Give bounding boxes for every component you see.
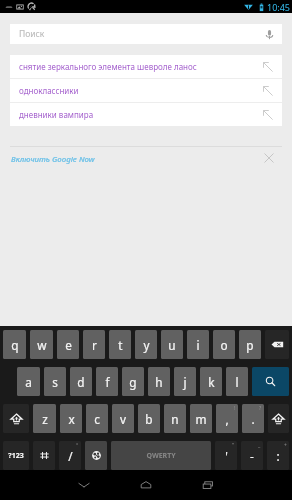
- staticText: b: [145, 411, 153, 427]
- button[interactable]: [268, 404, 289, 433]
- button[interactable]: [265, 330, 289, 359]
- button[interactable]: q: [3, 330, 26, 359]
- staticText: h: [155, 374, 163, 390]
- button[interactable]: v: [112, 404, 134, 433]
- staticText: дневники вампира: [19, 109, 254, 120]
- button[interactable]: одноклассники: [10, 79, 282, 102]
- staticText: ': [225, 448, 228, 464]
- staticText: k: [208, 374, 215, 390]
- button[interactable]: g: [122, 367, 144, 396]
- button[interactable]: Включить Google Now: [0, 147, 292, 172]
- button[interactable]: [3, 404, 29, 433]
- staticText: .: [251, 411, 255, 427]
- button[interactable]: [85, 441, 107, 470]
- button[interactable]: f: [96, 367, 118, 396]
- button[interactable]: снятие зеркального элемента шевроле лано…: [10, 55, 282, 78]
- staticText: r: [92, 337, 97, 353]
- button[interactable]: Back: [53, 470, 115, 500]
- staticText: x: [68, 411, 75, 427]
- staticText: s: [52, 374, 58, 390]
- staticText: :: [276, 448, 280, 464]
- button[interactable]: [252, 367, 289, 396]
- staticText: °: [76, 442, 79, 449]
- staticText: ?: [259, 405, 262, 412]
- button[interactable]: z: [33, 404, 56, 433]
- staticText: ,: [225, 411, 229, 427]
- button[interactable]: m: [190, 404, 212, 433]
- button[interactable]: n: [164, 404, 186, 433]
- button[interactable]: u: [161, 330, 183, 359]
- button[interactable]: Fill in query: [254, 55, 282, 78]
- staticText: ": [232, 442, 235, 449]
- staticText: d: [77, 374, 85, 390]
- staticText: w: [37, 337, 47, 353]
- staticText: y: [143, 337, 150, 353]
- staticText: t: [118, 337, 123, 353]
- button[interactable]: s: [44, 367, 66, 396]
- button[interactable]: j: [174, 367, 196, 396]
- staticText: -: [250, 448, 254, 464]
- button[interactable]: x: [60, 404, 82, 433]
- button[interactable]: Home: [115, 470, 177, 500]
- button[interactable]: p: [239, 330, 261, 359]
- button[interactable]: _: [241, 441, 263, 470]
- staticText: l: [235, 374, 239, 390]
- button[interactable]: Dismiss: [246, 147, 292, 172]
- staticText: f: [105, 374, 110, 390]
- staticText: i: [196, 337, 200, 353]
- button[interactable]: [33, 441, 55, 470]
- button[interactable]: +: [267, 441, 289, 470]
- staticText: одноклассники: [19, 85, 254, 96]
- button[interactable]: QWERTY: [111, 441, 211, 470]
- staticText: снятие зеркального элемента шевроле лано…: [19, 61, 254, 72]
- button[interactable]: h: [148, 367, 170, 396]
- button[interactable]: a: [17, 367, 40, 396]
- button[interactable]: b: [138, 404, 160, 433]
- button[interactable]: w: [30, 330, 53, 359]
- button[interactable]: дневники вампира: [10, 103, 282, 126]
- button[interactable]: i: [187, 330, 209, 359]
- staticText: a: [25, 374, 32, 390]
- button[interactable]: ?123: [3, 441, 29, 470]
- button[interactable]: l: [226, 367, 248, 396]
- staticText: c: [94, 411, 100, 427]
- button[interactable]: c: [86, 404, 108, 433]
- staticText: /: [68, 448, 73, 464]
- button[interactable]: e: [57, 330, 79, 359]
- staticText: g: [129, 374, 137, 390]
- staticText: QWERTY: [146, 451, 176, 461]
- button[interactable]: !: [216, 404, 238, 433]
- button[interactable]: Fill in query: [254, 103, 282, 126]
- button[interactable]: Voice search: [256, 24, 282, 44]
- button[interactable]: r: [83, 330, 105, 359]
- button[interactable]: k: [200, 367, 222, 396]
- staticText: 10:45: [267, 1, 291, 13]
- staticText: j: [183, 374, 187, 390]
- staticText: e: [65, 337, 72, 353]
- staticText: Поиск: [19, 28, 45, 40]
- staticText: _: [258, 442, 261, 449]
- button[interactable]: ?: [242, 404, 264, 433]
- button[interactable]: Recent apps: [177, 470, 239, 500]
- button[interactable]: y: [135, 330, 157, 359]
- staticText: q: [11, 337, 19, 353]
- button[interactable]: Fill in query: [254, 79, 282, 102]
- button[interactable]: o: [213, 330, 235, 359]
- staticText: o: [220, 337, 228, 353]
- button[interactable]: ": [215, 441, 237, 470]
- staticText: Включить Google Now: [11, 154, 246, 165]
- button[interactable]: °: [59, 441, 81, 470]
- staticText: +: [284, 442, 287, 449]
- staticText: u: [168, 337, 176, 353]
- staticText: v: [120, 411, 126, 427]
- staticText: z: [42, 411, 48, 427]
- staticText: m: [195, 411, 207, 427]
- button[interactable]: Поиск: [10, 24, 282, 44]
- staticText: !: [234, 405, 236, 412]
- staticText: ?123: [8, 451, 24, 461]
- button[interactable]: t: [109, 330, 131, 359]
- button[interactable]: d: [70, 367, 92, 396]
- staticText: p: [246, 337, 254, 353]
- staticText: n: [171, 411, 179, 427]
